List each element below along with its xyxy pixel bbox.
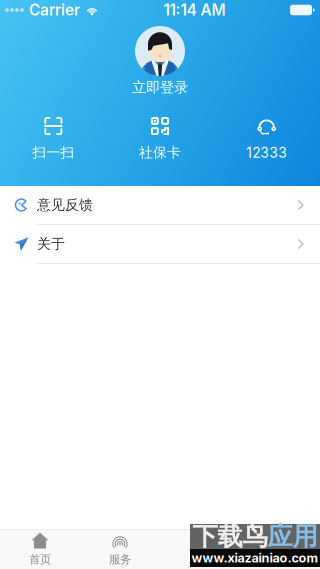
button[interactable]: 意见反馈 (0, 186, 320, 224)
staticText: 关于 (37, 235, 65, 253)
button[interactable]: 关于 (0, 225, 320, 263)
staticText: 意见反馈 (37, 196, 93, 214)
staticText: 下载鸟 (192, 520, 267, 552)
staticText: 立即登录 (132, 78, 188, 96)
staticText: 首页 (29, 552, 51, 567)
button[interactable]: 我的 (240, 529, 320, 569)
button[interactable]: 立即登录 (132, 80, 188, 95)
staticText: www.xiazainiao.com (191, 550, 318, 566)
button[interactable]: 首页 (0, 529, 80, 569)
staticText: 资讯 (189, 552, 211, 567)
button[interactable]: 服务 (80, 529, 160, 569)
button[interactable]: 扫一扫 (0, 117, 107, 161)
staticText: Carrier (29, 1, 80, 19)
staticText: 服务 (109, 552, 131, 567)
staticText: 社保卡 (139, 144, 181, 161)
staticText: 12333 (246, 144, 287, 161)
staticText: 我的 (269, 552, 291, 567)
staticText: 应用 (267, 520, 317, 552)
staticText: 11:14 AM (163, 1, 225, 19)
staticText: 扫一扫 (32, 144, 74, 161)
button[interactable]: 12333 (213, 117, 320, 161)
button[interactable]: 资讯 (160, 529, 240, 569)
button[interactable]: 社保卡 (107, 117, 213, 161)
